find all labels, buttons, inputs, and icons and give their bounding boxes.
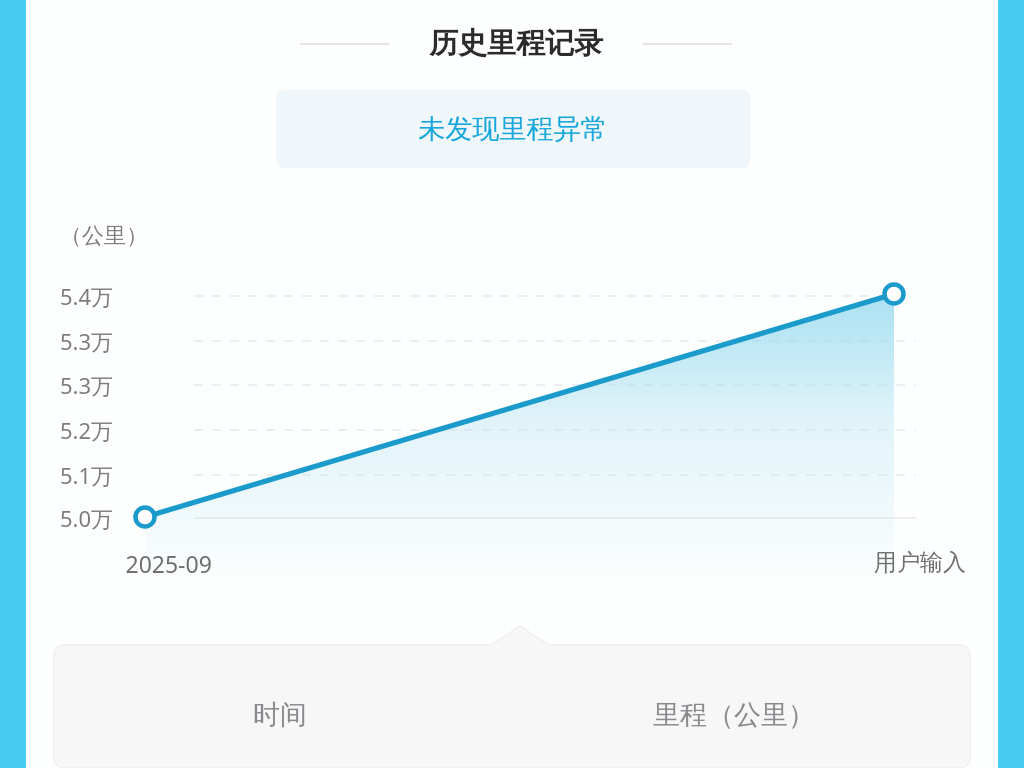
other: 历史里程折线图 xyxy=(26,200,998,600)
button[interactable] xyxy=(276,90,750,168)
button[interactable] xyxy=(296,18,736,68)
button[interactable] xyxy=(80,648,520,766)
button[interactable] xyxy=(520,648,960,766)
